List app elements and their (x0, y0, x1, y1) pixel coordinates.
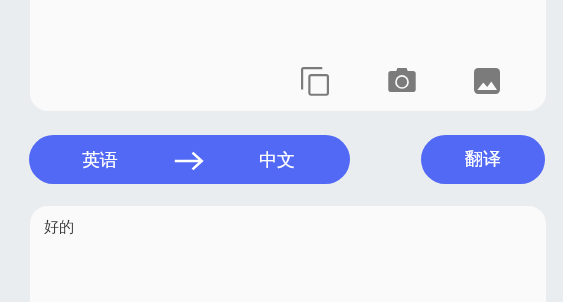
staticText: 翻译 (465, 148, 501, 171)
button[interactable]: 好的 (30, 206, 546, 302)
button[interactable]: 翻译 (421, 135, 545, 184)
button[interactable]: Source text input (30, 0, 546, 111)
button[interactable]: 英语 (29, 135, 350, 184)
button[interactable]: Copy (301, 67, 329, 95)
other: Swap languages (174, 151, 203, 171)
button[interactable]: Camera (388, 67, 416, 95)
button[interactable]: Gallery (474, 68, 500, 94)
staticText: 英语 (82, 149, 118, 172)
staticText: 中文 (259, 149, 295, 172)
staticText: 好的 (44, 218, 74, 237)
